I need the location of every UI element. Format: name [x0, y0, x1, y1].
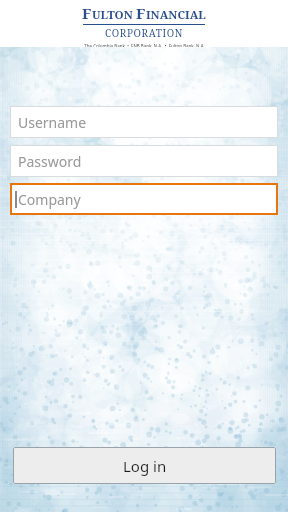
button[interactable]: Company — [10, 183, 278, 215]
staticText: The Columbia Bank • FNB Bank, N.A. • Ful… — [84, 43, 205, 47]
staticText: Company — [18, 190, 81, 209]
staticText: INANCIAL — [146, 7, 206, 23]
staticText: Username — [18, 113, 87, 132]
button[interactable]: Username — [10, 106, 278, 138]
staticText: F — [136, 3, 146, 23]
staticText: ULTON — [92, 7, 136, 23]
button[interactable]: Password — [10, 145, 278, 177]
staticText: F — [82, 3, 92, 23]
staticText: Password — [18, 152, 82, 171]
staticText: CORPORATION — [105, 26, 184, 40]
staticText: Log in — [123, 456, 167, 476]
button[interactable]: Log in — [13, 447, 276, 484]
